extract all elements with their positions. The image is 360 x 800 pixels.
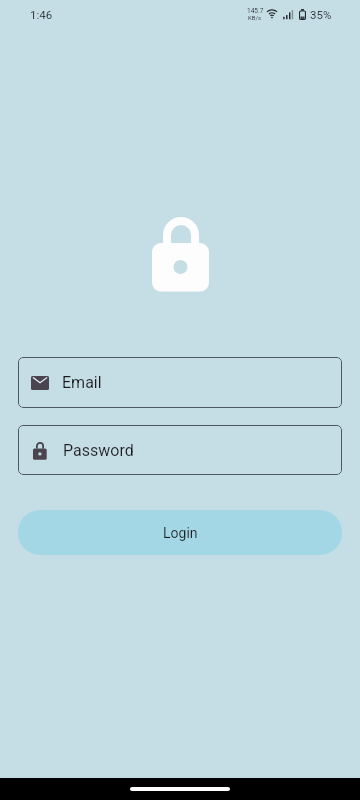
staticText: Password <box>63 441 134 460</box>
other: Battery 35 percent <box>299 9 306 20</box>
other: Wi-Fi <box>266 8 278 19</box>
other: Mobile signal <box>283 9 293 20</box>
staticText: 145.7 <box>247 7 264 15</box>
staticText: Email <box>62 373 102 392</box>
staticText: KB/s <box>248 14 262 21</box>
staticText: 1:46 <box>30 8 53 21</box>
staticText: Login <box>163 525 198 541</box>
staticText: 35% <box>310 8 332 21</box>
button[interactable]: Password <box>18 425 342 475</box>
button[interactable]: Login <box>18 510 342 555</box>
button[interactable]: Email <box>18 357 342 408</box>
